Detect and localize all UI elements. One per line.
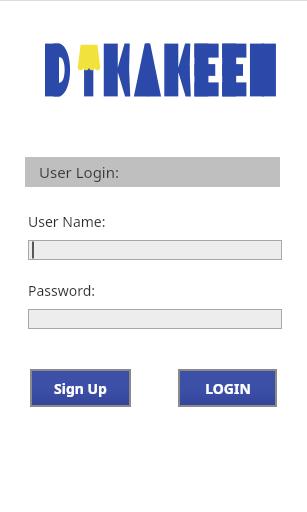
button[interactable]: User name input <box>28 240 282 260</box>
staticText: LOGIN <box>205 379 251 398</box>
staticText: User Login: <box>39 162 120 182</box>
staticText: Sign Up <box>54 379 107 398</box>
staticText: User Name: <box>28 212 106 231</box>
button[interactable]: LOGIN <box>180 371 275 405</box>
button[interactable]: Password input <box>28 309 282 329</box>
button[interactable]: Sign Up <box>32 371 129 405</box>
staticText: Password: <box>28 281 96 300</box>
